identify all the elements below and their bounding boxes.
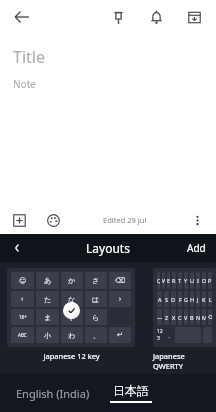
staticText: ABC: [18, 332, 27, 338]
staticText: B: [190, 314, 194, 321]
staticText: D: [171, 296, 176, 303]
staticText: ら: [92, 313, 100, 322]
staticText: —: [157, 314, 162, 321]
staticText: Add: [187, 241, 206, 255]
staticText: さ: [92, 276, 100, 285]
staticText: Q: [157, 277, 160, 284]
staticText: 123: [157, 328, 165, 342]
staticText: な: [68, 295, 76, 304]
button[interactable]: Back: [6, 237, 28, 259]
staticText: 18+: [19, 314, 27, 320]
staticText: V: [184, 314, 188, 321]
staticText: Title: [13, 46, 45, 68]
staticText: ☺: [19, 277, 27, 285]
staticText: Note: [13, 77, 36, 91]
staticText: Layouts: [86, 240, 130, 256]
staticText: G: [184, 296, 188, 303]
staticText: F: [179, 296, 182, 303]
staticText: 小: [44, 331, 51, 340]
staticText: H: [190, 296, 194, 303]
button[interactable]: More options: [187, 210, 207, 230]
staticText: や: [68, 313, 76, 322]
button[interactable]: Color palette: [43, 210, 63, 230]
button[interactable]: Q: [153, 268, 216, 371]
button[interactable]: Add: [9, 210, 29, 230]
button[interactable]: English (India): [0, 380, 98, 407]
staticText: S: [165, 296, 169, 303]
staticText: A: [158, 296, 162, 303]
staticText: K: [202, 296, 206, 303]
staticText: Japanese 12 key: [43, 351, 100, 361]
staticText: 、: [168, 332, 173, 338]
staticText: は: [92, 295, 100, 304]
staticText: わ: [68, 331, 76, 340]
staticText: Y: [184, 277, 188, 284]
staticText: J: [197, 296, 199, 303]
staticText: L: [209, 296, 212, 303]
staticText: ⌫: [115, 277, 125, 285]
staticText: P: [208, 277, 212, 284]
button[interactable]: Pin: [106, 5, 130, 29]
staticText: R: [172, 277, 176, 284]
staticText: X: [172, 314, 176, 321]
staticText: ⌫: [208, 314, 212, 320]
staticText: O: [202, 277, 206, 284]
button[interactable]: Reminder: [144, 5, 168, 29]
staticText: 日本語: [113, 383, 149, 398]
staticText: English (India): [16, 386, 90, 401]
staticText: I: [197, 277, 199, 284]
button[interactable]: Add: [177, 237, 216, 259]
staticText: M: [202, 314, 206, 321]
staticText: ↵: [117, 331, 123, 339]
staticText: 、: [93, 331, 100, 340]
staticText: ま: [44, 313, 52, 322]
button[interactable]: 日本語: [106, 383, 156, 403]
button[interactable]: ☺: [7, 268, 135, 361]
staticText: C: [178, 314, 182, 321]
staticText: Z: [165, 314, 169, 321]
staticText: た: [44, 295, 52, 304]
button[interactable]: Archive: [182, 5, 206, 29]
staticText: か: [68, 276, 76, 285]
staticText: Edited 29 Jul: [103, 215, 147, 225]
staticText: W: [162, 277, 165, 284]
staticText: ‹: [21, 294, 24, 304]
staticText: U: [190, 277, 194, 284]
staticText: N: [196, 314, 200, 321]
staticText: E: [167, 277, 170, 284]
staticText: ›: [119, 294, 122, 304]
staticText: T: [178, 277, 182, 284]
staticText: あ: [44, 276, 52, 285]
staticText: Japanese QWERTY: [153, 351, 216, 371]
button[interactable]: Back: [10, 5, 34, 29]
